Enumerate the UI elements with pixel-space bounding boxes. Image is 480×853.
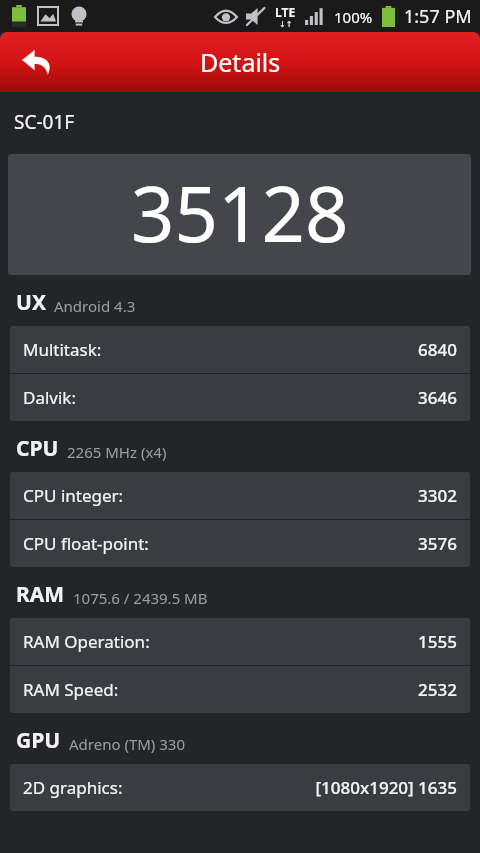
staticText: RAM xyxy=(16,580,65,609)
staticText: GPU xyxy=(16,726,61,755)
button[interactable]: RAM Speed: xyxy=(10,666,470,713)
staticText: 1:57 PM xyxy=(404,4,472,29)
staticText: Multitask: xyxy=(23,338,102,361)
staticText: 35128 xyxy=(131,161,349,265)
staticText: CPU xyxy=(16,434,59,463)
staticText: Adreno (TM) 330 xyxy=(69,734,185,754)
button[interactable]: Back xyxy=(8,33,66,91)
button[interactable]: Dalvik: xyxy=(10,374,470,421)
button[interactable]: CPU integer: xyxy=(10,472,470,519)
staticText: 1555 xyxy=(418,630,457,653)
staticText: [1080x1920] 1635 xyxy=(315,776,457,799)
button[interactable]: 2D graphics: xyxy=(10,764,470,811)
staticText: 2532 xyxy=(418,678,457,701)
staticText: ↓↑ xyxy=(279,20,293,29)
staticText: 1075.6 / 2439.5 MB xyxy=(73,588,208,608)
staticText: Details xyxy=(200,45,281,79)
button[interactable]: CPU float-point: xyxy=(10,520,470,567)
staticText: 3646 xyxy=(418,386,457,409)
staticText: 2D graphics: xyxy=(23,776,123,799)
staticText: LTE xyxy=(275,4,296,20)
staticText: 6840 xyxy=(418,338,457,361)
button[interactable]: Multitask: xyxy=(10,326,470,373)
staticText: 3576 xyxy=(418,532,457,555)
staticText: Android 4.3 xyxy=(54,296,136,316)
staticText: CPU integer: xyxy=(23,484,124,507)
staticText: RAM Operation: xyxy=(23,630,150,653)
staticText: Dalvik: xyxy=(23,386,76,409)
staticText: CPU float-point: xyxy=(23,532,149,555)
staticText: 100% xyxy=(334,7,373,27)
staticText: SC-01F xyxy=(14,109,75,135)
button[interactable]: RAM Operation: xyxy=(10,618,470,665)
staticText: UX xyxy=(16,288,46,317)
staticText: 2265 MHz (x4) xyxy=(67,442,167,462)
staticText: RAM Speed: xyxy=(23,678,119,701)
staticText: 3302 xyxy=(418,484,457,507)
